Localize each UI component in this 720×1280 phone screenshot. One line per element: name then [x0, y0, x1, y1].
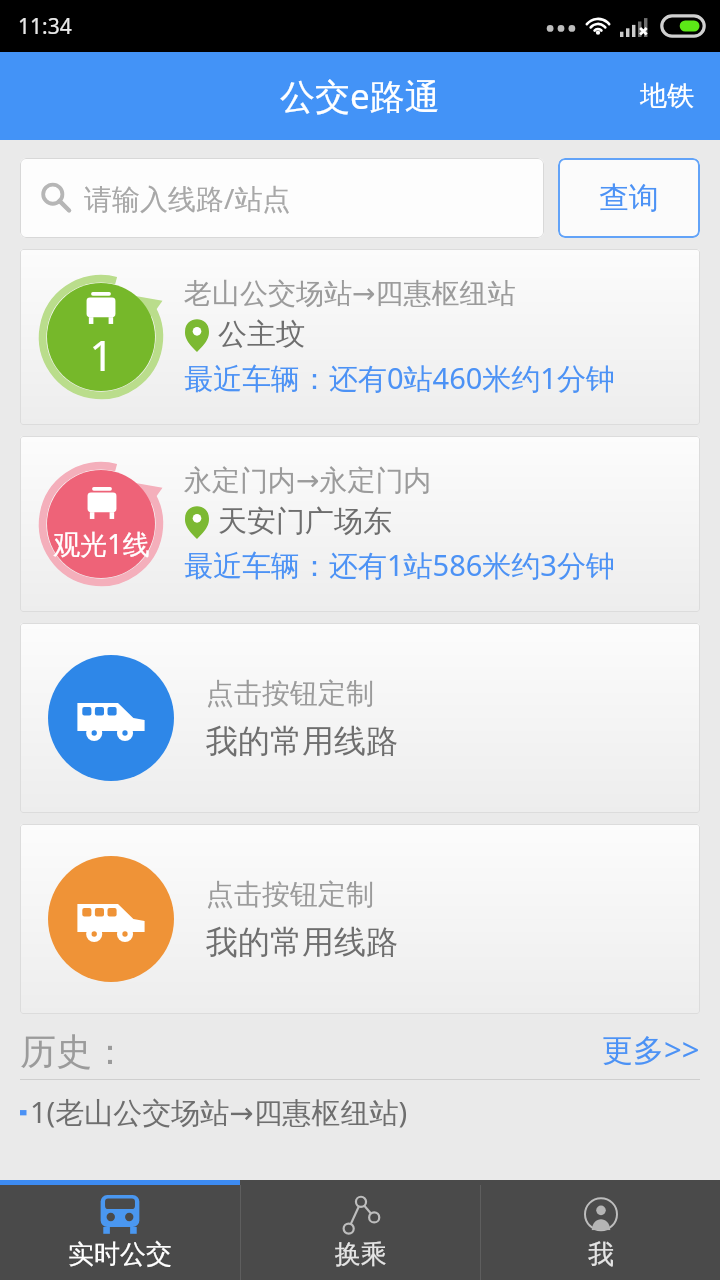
- button[interactable]: 换乘: [241, 1185, 480, 1280]
- staticText: 最近车辆：还有1站586米约3分钟: [184, 545, 615, 585]
- button[interactable]: 点击按钮定制: [20, 824, 700, 1014]
- staticText: 永定门内→永定门内: [184, 463, 432, 498]
- staticText: 点击按钮定制: [206, 676, 374, 711]
- staticText: 公主坟: [218, 316, 305, 353]
- staticText: 1: [89, 326, 114, 383]
- staticText: 天安门广场东: [218, 503, 392, 540]
- staticText: 更多>>: [602, 1028, 700, 1070]
- staticText: 观光1线: [53, 525, 150, 562]
- button[interactable]: 观光1线: [20, 436, 700, 612]
- button[interactable]: 地铁: [614, 52, 720, 140]
- staticText: 请输入线路/站点: [84, 179, 291, 217]
- staticText: 1(老山公交场站→四惠枢纽站): [30, 1092, 408, 1132]
- staticText: 历史：: [20, 1029, 128, 1074]
- button[interactable]: 点击按钮定制: [20, 623, 700, 813]
- staticText: 最近车辆：还有0站460米约1分钟: [184, 358, 615, 398]
- staticText: 我的常用线路: [206, 721, 398, 761]
- staticText: 老山公交场站→四惠枢纽站: [184, 276, 516, 311]
- button[interactable]: 我: [481, 1185, 720, 1280]
- staticText: 查询: [599, 179, 659, 217]
- staticText: 我: [588, 1238, 614, 1271]
- staticText: 换乘: [335, 1238, 387, 1271]
- staticText: 公交e路通: [280, 72, 440, 120]
- button[interactable]: 更多>>: [602, 1028, 700, 1074]
- staticText: 实时公交: [68, 1238, 172, 1271]
- staticText: 地铁: [640, 79, 694, 113]
- staticText: 11:34: [18, 12, 72, 41]
- button[interactable]: 请输入线路/站点: [20, 158, 544, 238]
- other: 我: [579, 1195, 623, 1235]
- staticText: 点击按钮定制: [206, 877, 374, 912]
- other: 换乘: [339, 1195, 383, 1235]
- button[interactable]: 1(老山公交场站→四惠枢纽站): [20, 1092, 700, 1132]
- button[interactable]: 实时公交: [0, 1185, 240, 1280]
- button[interactable]: 查询: [558, 158, 700, 238]
- button[interactable]: 1: [20, 249, 700, 425]
- staticText: 我的常用线路: [206, 922, 398, 962]
- other: 实时公交: [98, 1195, 142, 1235]
